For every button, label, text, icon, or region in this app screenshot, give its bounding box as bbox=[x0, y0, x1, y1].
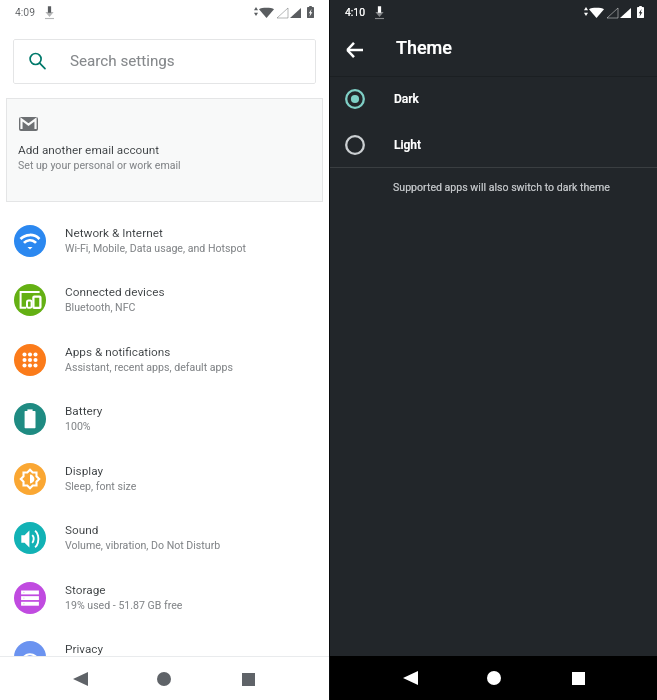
button[interactable]: Recent apps bbox=[558, 658, 598, 698]
button[interactable]: Light bbox=[330, 122, 657, 168]
button[interactable]: Recent apps bbox=[228, 659, 268, 699]
staticText: Assistant, recent apps, default apps bbox=[65, 361, 233, 373]
staticText: Storage bbox=[65, 583, 106, 597]
button[interactable]: Apps & notifications bbox=[0, 330, 329, 389]
button[interactable]: Back bbox=[390, 658, 430, 698]
staticText: Supported apps will also switch to dark … bbox=[393, 181, 610, 193]
button[interactable]: Network & Internet bbox=[0, 211, 329, 270]
staticText: Sleep, font size bbox=[65, 480, 137, 492]
staticText: Privacy bbox=[65, 642, 104, 656]
staticText: Wi-Fi, Mobile, Data usage, and Hotspot bbox=[65, 242, 246, 254]
staticText: Light bbox=[394, 138, 422, 152]
staticText: Battery bbox=[65, 404, 103, 418]
button[interactable]: Display bbox=[0, 449, 329, 508]
button[interactable]: Connected devices bbox=[0, 270, 329, 329]
button[interactable]: Back bbox=[60, 659, 100, 699]
button[interactable]: Sound bbox=[0, 508, 329, 567]
button[interactable]: Navigate up bbox=[346, 42, 363, 58]
staticText: Display bbox=[65, 464, 104, 478]
staticText: Theme bbox=[396, 37, 452, 58]
staticText: Volume, vibration, Do Not Disturb bbox=[65, 539, 221, 551]
staticText: Bluetooth, NFC bbox=[65, 301, 136, 313]
staticText: Network & Internet bbox=[65, 226, 163, 240]
button[interactable]: Storage bbox=[0, 568, 329, 627]
button[interactable]: Battery bbox=[0, 389, 329, 448]
staticText: Sound bbox=[65, 523, 99, 537]
button[interactable]: Home bbox=[144, 659, 184, 699]
staticText: 4:10 bbox=[345, 6, 366, 18]
staticText: 19% used - 51.87 GB free bbox=[65, 599, 183, 611]
staticText: 100% bbox=[65, 420, 91, 432]
button[interactable]: Dark bbox=[330, 76, 657, 122]
button[interactable]: Add another email account bbox=[6, 98, 323, 202]
button[interactable]: Search settings bbox=[13, 39, 316, 84]
staticText: Add another email account bbox=[18, 143, 160, 157]
button[interactable]: Privacy bbox=[0, 627, 329, 686]
staticText: Dark bbox=[394, 92, 419, 106]
staticText: Connected devices bbox=[65, 285, 165, 299]
staticText: Apps & notifications bbox=[65, 345, 171, 359]
staticText: 4:09 bbox=[15, 6, 36, 18]
staticText: Set up your personal or work email bbox=[18, 159, 181, 171]
staticText: Search settings bbox=[70, 52, 175, 70]
button[interactable]: Home bbox=[474, 658, 514, 698]
